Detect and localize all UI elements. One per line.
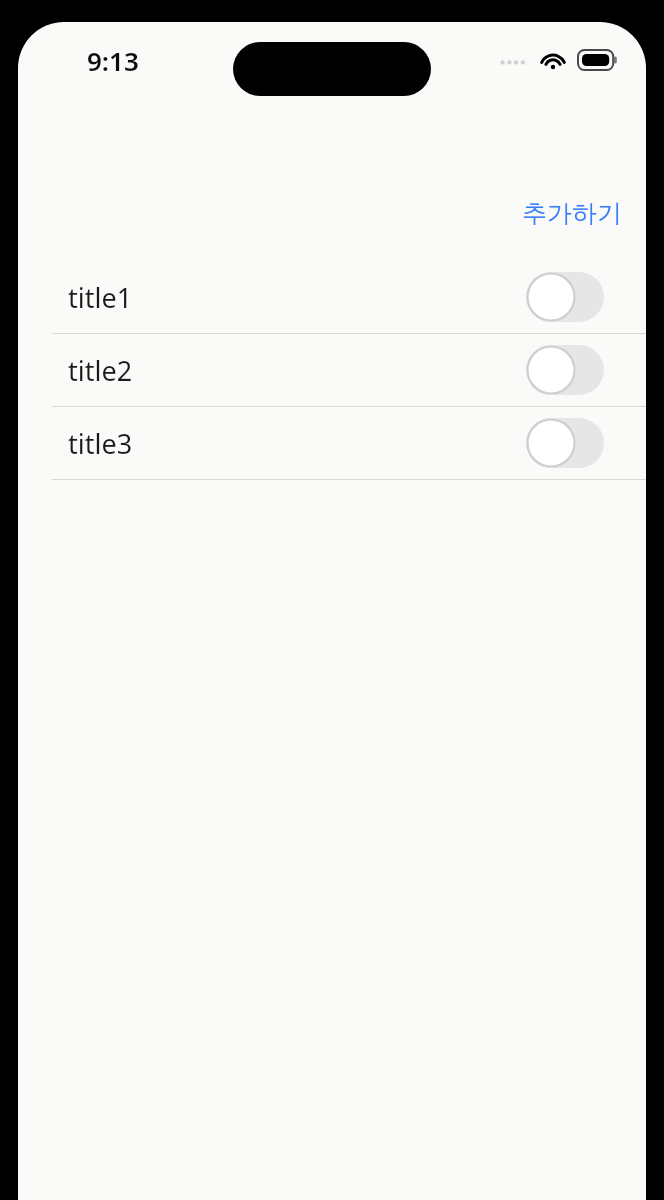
button[interactable]: 추가하기 (516, 194, 628, 233)
button[interactable]: Toggle (526, 345, 604, 395)
staticText: 9:13 (87, 43, 139, 78)
button[interactable]: title1 (18, 261, 646, 333)
staticText: title2 (68, 352, 526, 389)
button[interactable]: Toggle (526, 272, 604, 322)
staticText: 추가하기 (522, 198, 622, 229)
button[interactable]: title2 (18, 334, 646, 406)
button[interactable]: Toggle (526, 418, 604, 468)
staticText: title1 (68, 279, 526, 316)
button[interactable]: title3 (18, 407, 646, 479)
staticText: title3 (68, 425, 526, 462)
